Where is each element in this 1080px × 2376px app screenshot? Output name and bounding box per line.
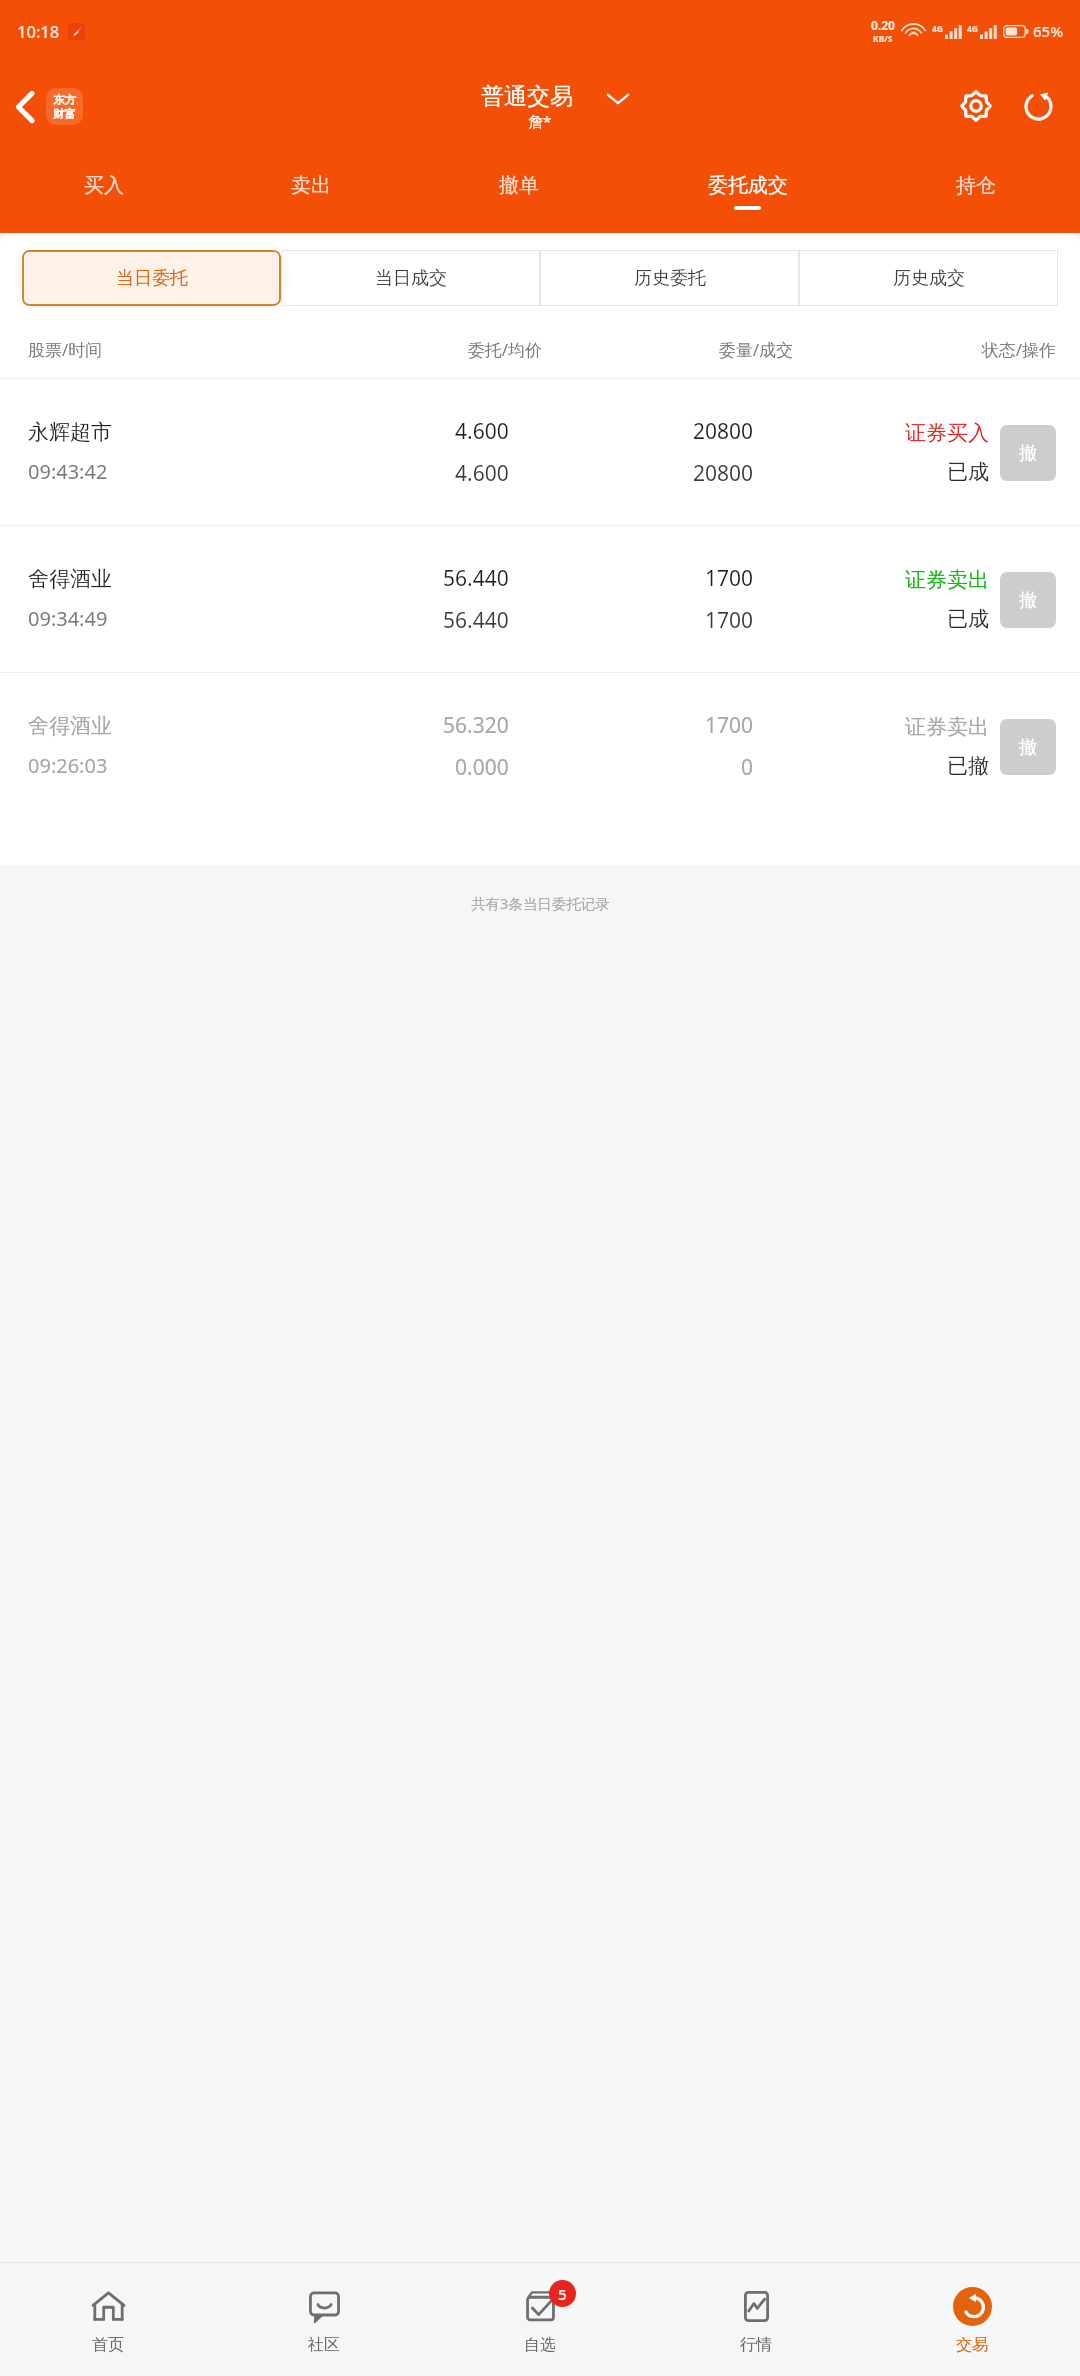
staticText: 詹* (528, 111, 552, 131)
button[interactable]: 首页 (0, 2263, 216, 2376)
button[interactable]: 当日成交 (281, 250, 540, 306)
button[interactable]: 历史成交 (799, 250, 1058, 306)
staticText: 股票/时间 (28, 338, 291, 361)
button[interactable]: 卖出 (207, 150, 415, 226)
staticText: 65% (1033, 21, 1063, 41)
staticText: 09:34:49 (28, 605, 108, 632)
staticText: 已成 (947, 606, 989, 632)
staticText: 4G (932, 23, 944, 35)
staticText: 0.20 (871, 17, 895, 33)
button[interactable]: 永辉超市 (0, 379, 1080, 525)
button[interactable]: Settings (950, 80, 1002, 132)
staticText: 20800 (693, 459, 754, 488)
button[interactable]: 交易 (864, 2263, 1080, 2376)
staticText: 撤单 (499, 173, 539, 198)
staticText: 4.600 (455, 459, 509, 488)
staticText: 当日委托 (116, 267, 188, 290)
staticText: 56.440 (443, 564, 509, 593)
staticText: 交易 (956, 2335, 988, 2355)
staticText: 东方 (53, 93, 76, 107)
staticText: 09:26:03 (28, 752, 108, 779)
staticText: 证券买入 (905, 420, 989, 446)
button[interactable]: 社区 (216, 2263, 432, 2376)
staticText: 历史成交 (893, 267, 965, 290)
button[interactable]: 撤 (1000, 425, 1056, 481)
staticText: 1700 (705, 711, 754, 740)
staticText: 0.000 (455, 753, 509, 782)
button[interactable]: Back (0, 78, 93, 135)
staticText: 撤 (1019, 589, 1037, 612)
staticText: 持仓 (956, 173, 996, 198)
staticText: 委量/成交 (542, 338, 793, 361)
staticText: 委托成交 (708, 173, 788, 198)
staticText: 状态/操作 (793, 338, 1056, 361)
staticText: 1700 (705, 606, 754, 635)
button[interactable]: 普通交易 (481, 82, 599, 131)
button[interactable]: 委托成交 (623, 150, 872, 226)
staticText: 共有3条当日委托记录 (471, 893, 610, 913)
staticText: 56.440 (443, 606, 509, 635)
button[interactable]: Refresh (1012, 80, 1064, 132)
button[interactable]: 舍得酒业 (0, 673, 1080, 819)
staticText: 卖出 (291, 173, 331, 198)
staticText: 首页 (92, 2335, 124, 2355)
staticText: 已成 (947, 459, 989, 485)
staticText: 当日成交 (375, 267, 447, 290)
staticText: 证券卖出 (905, 567, 989, 593)
button[interactable]: 撤单 (415, 150, 623, 226)
staticText: 历史委托 (634, 267, 706, 290)
staticText: 舍得酒业 (28, 713, 112, 739)
staticText: 撤 (1019, 442, 1037, 465)
button[interactable]: 行情 (648, 2263, 864, 2376)
staticText: 已撤 (947, 753, 989, 779)
staticText: 自选 (524, 2335, 556, 2355)
button[interactable]: 舍得酒业 (0, 526, 1080, 672)
staticText: 永辉超市 (28, 419, 112, 445)
staticText: 09:43:42 (28, 458, 108, 485)
staticText: 委托/均价 (291, 338, 542, 361)
staticText: 5 (558, 2284, 567, 2304)
staticText: 20800 (693, 417, 754, 446)
staticText: 10:18 (17, 20, 60, 42)
staticText: 4.600 (455, 417, 509, 446)
staticText: 0 (741, 753, 754, 782)
button[interactable]: 买入 (0, 150, 207, 226)
button[interactable]: 撤 (1000, 572, 1056, 628)
button[interactable]: 持仓 (872, 150, 1080, 226)
staticText: 行情 (740, 2335, 772, 2355)
button[interactable]: 历史委托 (540, 250, 799, 306)
staticText: 社区 (308, 2335, 340, 2355)
staticText: 4G (967, 23, 979, 35)
staticText: 1700 (705, 564, 754, 593)
staticText: 财富 (53, 107, 76, 121)
staticText: 撤 (1019, 736, 1037, 759)
staticText: 证券卖出 (905, 714, 989, 740)
staticText: KB/S (873, 33, 893, 45)
button[interactable]: 自选 (432, 2263, 648, 2376)
staticText: 56.320 (443, 711, 509, 740)
staticText: 舍得酒业 (28, 566, 112, 592)
staticText: 普通交易 (481, 82, 573, 111)
button[interactable]: 当日委托 (22, 250, 281, 306)
staticText: 买入 (84, 173, 124, 198)
button[interactable]: 撤 (1000, 719, 1056, 775)
